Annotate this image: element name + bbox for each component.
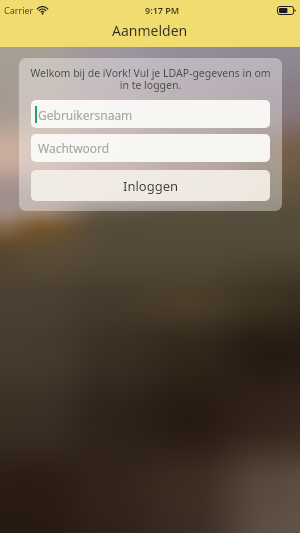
staticText: Gebruikersnaam [38,107,133,123]
staticText: 9:17 PM [145,4,180,16]
button[interactable]: Wachtwoord [31,134,270,162]
button[interactable]: Gebruikersnaam [31,100,270,128]
staticText: Carrier [4,4,34,16]
button[interactable]: Inloggen [31,170,270,201]
staticText: Aanmelden [112,21,188,40]
staticText: Wachtwoord [38,140,110,156]
staticText: Inloggen [123,177,179,195]
staticText: Welkom bij de iVork! Vul je LDAP-gegeven… [25,66,276,92]
